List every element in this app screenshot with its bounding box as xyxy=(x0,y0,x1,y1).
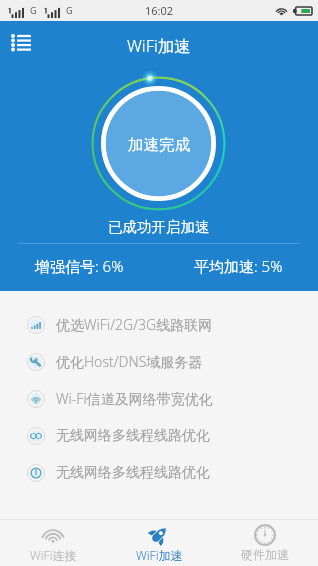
staticText: WiFi加速 xyxy=(127,34,191,57)
button[interactable]: 无线网络多线程线路优化 xyxy=(0,417,318,454)
button[interactable]: 优选WiFi/2G/3G线路联网 xyxy=(0,306,318,343)
staticText: WiFi连接 xyxy=(30,547,77,563)
staticText: 增强信号: 6% xyxy=(35,256,124,276)
button[interactable]: 优化Host/DNS域服务器 xyxy=(0,343,318,380)
staticText: 已成功开启加速 xyxy=(108,218,210,236)
staticText: 平均加速: 5% xyxy=(194,256,283,276)
button[interactable]: WiFi连接 xyxy=(0,524,106,566)
staticText: 硬件加速 xyxy=(241,547,289,562)
button[interactable]: WiFi加速 xyxy=(106,524,212,566)
button[interactable]: Menu xyxy=(5,26,37,58)
button[interactable]: Wi-Fi信道及网络带宽优化 xyxy=(0,380,318,417)
staticText: 16:02 xyxy=(145,3,174,18)
staticText: 优化Host/DNS域服务器 xyxy=(56,352,203,371)
staticText: WiFi加速 xyxy=(136,547,183,563)
staticText: 无线网络多线程线路优化 xyxy=(56,464,210,482)
staticText: 加速完成 xyxy=(128,135,190,155)
staticText: G xyxy=(66,4,73,16)
staticText: G xyxy=(30,4,37,16)
staticText: Wi-Fi信道及网络带宽优化 xyxy=(56,389,213,408)
staticText: 无线网络多线程线路优化 xyxy=(56,427,210,445)
button[interactable]: 无线网络多线程线路优化 xyxy=(0,454,318,491)
staticText: 优选WiFi/2G/3G线路联网 xyxy=(56,315,213,334)
button[interactable]: 硬件加速 xyxy=(212,524,318,566)
